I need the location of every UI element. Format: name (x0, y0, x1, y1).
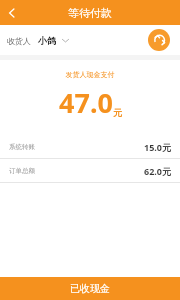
staticText: 已收现金 (70, 282, 110, 295)
staticText: 47.0 (59, 84, 113, 121)
button[interactable]: 已收现金 (0, 277, 180, 300)
staticText: 62.0元 (144, 165, 171, 177)
staticText: 系统转账 (9, 143, 35, 151)
button[interactable]: Call (148, 29, 170, 51)
staticText: 小鸽 (38, 35, 56, 46)
staticText: 发货人现金支付 (0, 70, 180, 79)
staticText: 元 (113, 107, 122, 118)
staticText: 收货人 (7, 36, 31, 46)
button[interactable]: Back (0, 1, 24, 25)
button[interactable]: 系统转账 (0, 135, 180, 158)
button[interactable]: 收货人 (7, 35, 70, 46)
staticText: 等待付款 (68, 6, 112, 20)
staticText: 订单总额 (9, 167, 35, 175)
button[interactable]: 订单总额 (0, 159, 180, 182)
staticText: 15.0元 (144, 141, 171, 153)
